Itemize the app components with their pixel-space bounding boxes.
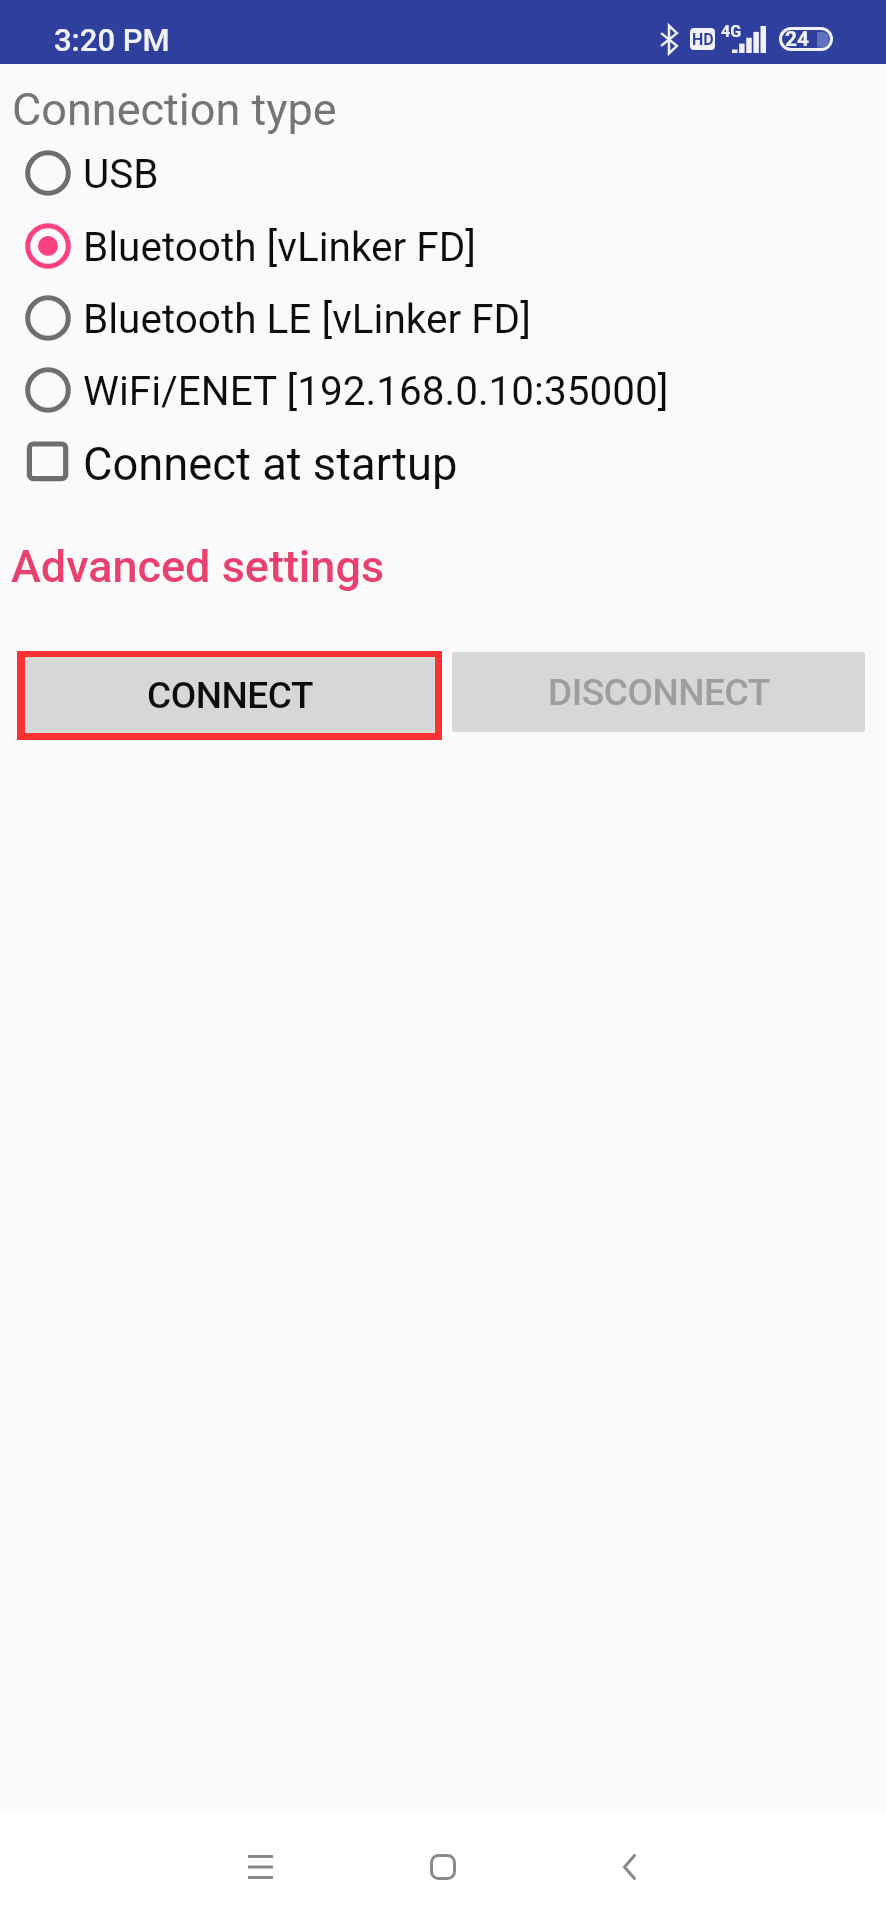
staticText: 4G xyxy=(721,22,742,41)
button[interactable]: Connect at startup xyxy=(0,430,886,498)
staticText: Advanced settings xyxy=(11,540,385,593)
staticText: DISCONNECT xyxy=(548,671,770,714)
button[interactable]: CONNECT xyxy=(17,651,442,740)
button[interactable]: Recent apps xyxy=(212,1813,308,1920)
staticText: Connect at startup xyxy=(83,438,458,491)
staticText: 24 xyxy=(785,27,810,51)
button[interactable]: Back xyxy=(581,1813,677,1920)
staticText: WiFi/ENET [192.168.0.10:35000] xyxy=(83,367,669,414)
button[interactable]: Home xyxy=(395,1813,491,1920)
button[interactable]: USB xyxy=(0,139,886,207)
staticText: HD xyxy=(692,30,714,49)
button[interactable]: Bluetooth [vLinker FD] xyxy=(0,212,886,280)
staticText: Bluetooth LE [vLinker FD] xyxy=(83,295,531,342)
button[interactable]: WiFi/ENET [192.168.0.10:35000] xyxy=(0,356,886,424)
staticText: Connection type xyxy=(12,83,337,136)
button[interactable]: Advanced settings xyxy=(0,535,385,597)
button[interactable]: DISCONNECT xyxy=(452,652,865,732)
button[interactable]: Bluetooth LE [vLinker FD] xyxy=(0,284,886,352)
staticText: Bluetooth [vLinker FD] xyxy=(83,223,476,270)
staticText: USB xyxy=(83,150,159,197)
staticText: CONNECT xyxy=(147,674,314,717)
staticText: 3:20 PM xyxy=(54,22,170,58)
